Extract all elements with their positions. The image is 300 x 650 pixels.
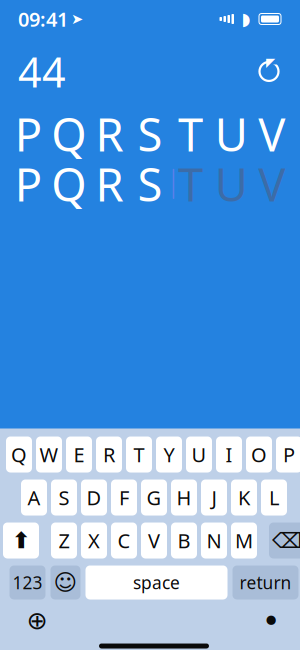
button[interactable]: V (141, 522, 167, 558)
staticText: 09:41 (18, 6, 68, 32)
staticText: G (146, 484, 161, 511)
staticText: ⊕ (26, 606, 47, 635)
staticText: X (88, 527, 100, 554)
staticText: Q (51, 104, 86, 164)
staticText: E (73, 441, 84, 468)
button[interactable]: C (111, 522, 137, 558)
button[interactable]: Z (51, 522, 77, 558)
button[interactable]: U (186, 436, 212, 472)
staticText: K (238, 484, 250, 511)
button[interactable]: N (201, 522, 227, 558)
staticText: ☺ (53, 570, 77, 595)
staticText: U (191, 441, 206, 468)
staticText: A (27, 484, 40, 511)
staticText: R (95, 154, 123, 214)
staticText: space (133, 571, 180, 594)
staticText: V (148, 527, 160, 554)
staticText: V (258, 154, 285, 214)
staticText: L (269, 484, 279, 511)
button[interactable]: return (232, 565, 298, 599)
button[interactable]: J (201, 479, 227, 515)
staticText: I (225, 441, 232, 468)
staticText: Y (163, 441, 174, 468)
staticText: O (251, 441, 267, 468)
button[interactable]: I (216, 436, 242, 472)
button[interactable]: L (261, 479, 287, 515)
button[interactable]: Next keyboard (20, 605, 54, 635)
staticText: F (119, 484, 129, 511)
staticText: ⏺ (266, 611, 276, 630)
button[interactable]: Delete (269, 522, 300, 558)
button[interactable]: T (126, 436, 152, 472)
staticText: W (39, 441, 58, 468)
button[interactable]: Y (156, 436, 182, 472)
button[interactable]: A (21, 479, 47, 515)
staticText: Z (58, 527, 69, 554)
staticText: C (117, 527, 130, 554)
staticText: P (283, 441, 295, 468)
staticText: Q (51, 154, 86, 214)
button[interactable]: Q (6, 436, 32, 472)
staticText: R (95, 104, 123, 164)
button[interactable]: Dictation (254, 605, 288, 635)
staticText: B (177, 527, 190, 554)
button[interactable]: M (231, 522, 257, 558)
staticText: ➤ (71, 11, 83, 27)
button[interactable]: S (51, 479, 77, 515)
button[interactable]: D (81, 479, 107, 515)
staticText: ⌫ (272, 528, 300, 553)
staticText: S (58, 484, 69, 511)
button[interactable]: H (171, 479, 197, 515)
button[interactable]: O (246, 436, 272, 472)
staticText: U (215, 104, 248, 164)
staticText: return (239, 571, 291, 594)
button[interactable]: K (231, 479, 257, 515)
staticText: D (86, 484, 101, 511)
staticText: U (215, 154, 248, 214)
button[interactable]: W (36, 436, 62, 472)
staticText: T (178, 104, 203, 164)
button[interactable]: 123 (9, 565, 45, 599)
staticText: 123 (12, 571, 42, 594)
button[interactable]: ☺ (50, 565, 80, 599)
button[interactable]: G (141, 479, 167, 515)
staticText: J (211, 484, 216, 511)
staticText: ◤ (266, 56, 275, 69)
staticText: ◗ (241, 9, 250, 29)
staticText: V (258, 104, 285, 164)
button[interactable]: space (85, 565, 227, 599)
staticText: ⬆ (11, 528, 30, 553)
staticText: P (15, 154, 42, 214)
staticText: T (178, 154, 203, 214)
staticText: S (137, 154, 162, 214)
button[interactable]: B (171, 522, 197, 558)
button[interactable]: X (81, 522, 107, 558)
button[interactable]: F (111, 479, 137, 515)
button[interactable]: E (66, 436, 92, 472)
staticText: 44 (18, 44, 66, 99)
button[interactable]: P (276, 436, 300, 472)
staticText: H (176, 484, 191, 511)
staticText: N (206, 527, 221, 554)
staticText: Q (11, 441, 27, 468)
button[interactable]: R (96, 436, 122, 472)
staticText: R (103, 441, 115, 468)
staticText: S (137, 104, 162, 164)
staticText: M (235, 527, 253, 554)
button[interactable]: Reset (256, 58, 282, 84)
staticText: T (133, 441, 144, 468)
button[interactable]: Shift (3, 522, 39, 558)
staticText: P (15, 104, 42, 164)
